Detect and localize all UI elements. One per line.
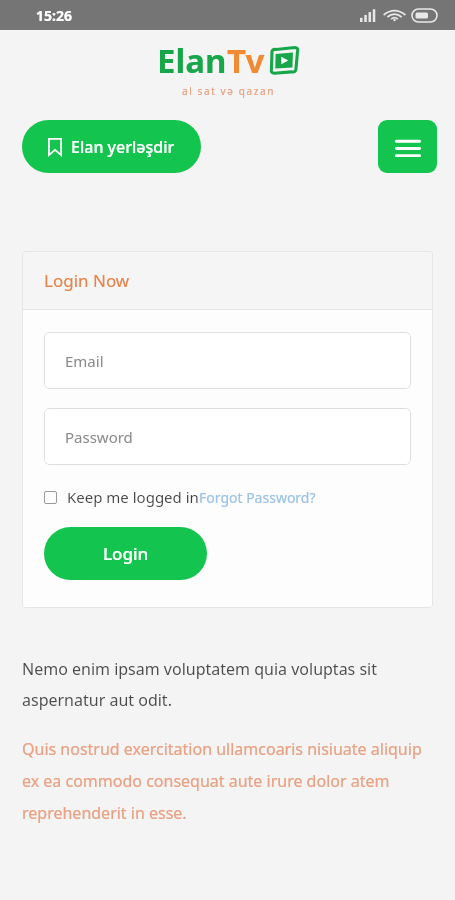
staticText: Login Now xyxy=(44,269,130,292)
button[interactable]: Login xyxy=(44,527,207,580)
staticText: Login xyxy=(103,542,149,565)
button[interactable] xyxy=(44,491,57,504)
staticText: Quis nostrud exercitation ullamcoaris ni… xyxy=(22,738,433,824)
button[interactable]: Forgot Password? xyxy=(199,488,316,507)
staticText: Keep me logged in xyxy=(67,487,199,507)
staticText: 15:26 xyxy=(36,6,72,25)
button[interactable]: Email xyxy=(44,332,411,389)
staticText: Elan yerləşdir xyxy=(71,136,175,158)
staticText: Password xyxy=(65,427,133,447)
staticText: Nemo enim ipsam voluptatem quia voluptas… xyxy=(22,658,433,710)
staticText: Email xyxy=(65,351,104,371)
staticText: al sat və qazan xyxy=(182,84,275,98)
staticText: Tv xyxy=(227,38,265,83)
button[interactable]: Password xyxy=(44,408,411,465)
button[interactable]: Menu xyxy=(378,120,437,173)
button[interactable]: Elan yerləşdir xyxy=(22,120,201,173)
staticText: Elan xyxy=(157,38,227,83)
